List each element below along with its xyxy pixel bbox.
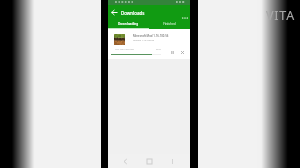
staticText: Version 1.16.100.56: [133, 39, 155, 42]
button[interactable]: Downloading: [108, 19, 149, 29]
staticText: 30 %: [156, 48, 161, 51]
staticText: Finished: [163, 22, 176, 26]
staticText: Downloading: [118, 22, 139, 26]
staticText: Minecraft Mod 1.16.100.56: [133, 34, 169, 38]
staticText: Downloads: [121, 10, 145, 16]
button[interactable]: Back: [110, 8, 119, 17]
button[interactable]: Home: [144, 156, 155, 167]
button[interactable]: Finished: [149, 19, 190, 29]
button[interactable]: Recent apps: [167, 156, 178, 167]
staticText: 12.7 MB / 42.3 MB: [115, 48, 134, 51]
staticText: VITA: [266, 7, 296, 24]
button[interactable]: Pause: [168, 48, 176, 56]
button[interactable]: Back: [120, 156, 131, 167]
button[interactable]: Cancel download: [178, 48, 186, 56]
button[interactable]: More options: [181, 14, 189, 22]
